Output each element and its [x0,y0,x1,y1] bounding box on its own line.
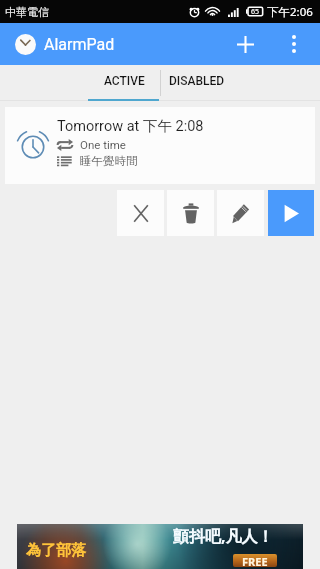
staticText: 65 [251,7,260,17]
button[interactable]: Add alarm [224,23,266,65]
button[interactable]: Advertisement [17,524,303,569]
staticText: 顫抖吧,凡人！ [173,525,274,547]
button[interactable]: DISABLED [161,65,233,101]
staticText: 下午2:06 [267,4,313,20]
button[interactable]: ACTIVE [88,65,160,101]
button[interactable]: Tomorrow at 下午 2:08 [5,107,315,184]
button[interactable]: Delete [167,190,214,236]
button[interactable]: More options [275,23,313,65]
staticText: AlarmPad [44,35,115,54]
button[interactable]: Start alarm [268,190,314,236]
staticText: One time [80,138,126,151]
button[interactable]: Dismiss [117,190,164,236]
staticText: 睡午覺時間 [80,154,138,168]
staticText: ACTIVE [104,74,145,88]
staticText: DISABLED [169,74,225,88]
staticText: 中華電信 [5,5,49,19]
staticText: 為了部落 [26,541,86,560]
staticText: Tomorrow at 下午 2:08 [57,117,204,135]
button[interactable]: Edit [217,190,264,236]
staticText: FREE [242,554,268,567]
